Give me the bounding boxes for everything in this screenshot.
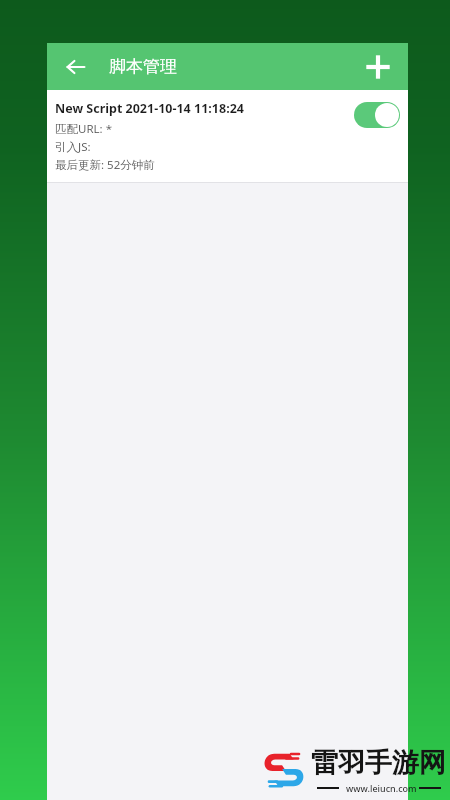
staticText: 匹配URL: * (55, 121, 112, 137)
staticText: 引入JS: (55, 139, 91, 155)
staticText: New Script 2021-10-14 11:18:24 (55, 100, 244, 117)
staticText: www.leiucn.com (339, 782, 419, 794)
button[interactable]: Back (59, 50, 93, 84)
button[interactable]: Add script (358, 47, 398, 87)
staticText: 雷羽手游网 (311, 746, 446, 780)
button[interactable]: New Script 2021-10-14 11:18:24 (47, 90, 408, 182)
staticText: 最后更新: 52分钟前 (55, 157, 155, 173)
button[interactable]: Enable script (354, 102, 400, 128)
staticText: 脚本管理 (109, 56, 177, 77)
